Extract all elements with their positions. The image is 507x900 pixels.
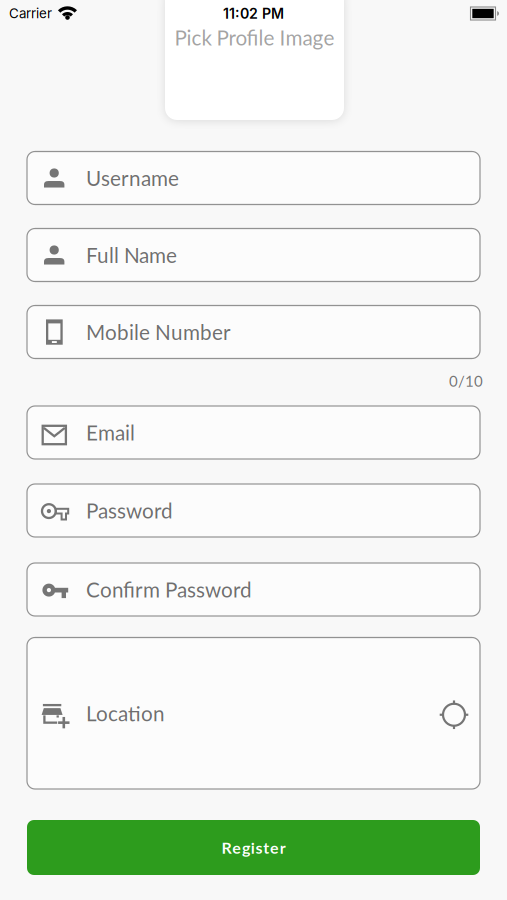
staticText: Password [86, 498, 173, 523]
staticText: 11:02 PM [223, 5, 284, 22]
button[interactable]: Password [27, 484, 480, 537]
button[interactable]: Email [27, 406, 480, 459]
staticText: Username [86, 166, 179, 190]
button[interactable]: Register [27, 820, 480, 875]
button[interactable]: Username [27, 151, 480, 204]
staticText: Carrier [9, 5, 52, 21]
button[interactable]: Confirm Password [27, 563, 480, 616]
staticText: Confirm Password [86, 577, 252, 602]
staticText: Mobile Number [86, 320, 231, 344]
button[interactable]: Full Name [27, 228, 480, 281]
staticText: Full Name [86, 243, 177, 267]
staticText: Location [86, 701, 165, 726]
staticText: Register [221, 838, 286, 857]
button[interactable]: Pick Profile Image [165, 0, 344, 120]
staticText: Email [86, 420, 135, 445]
staticText: Pick Profile Image [174, 25, 334, 50]
button[interactable]: Mobile Number [27, 305, 480, 358]
button[interactable]: Location [27, 637, 480, 789]
staticText: 0/10 [449, 372, 483, 390]
